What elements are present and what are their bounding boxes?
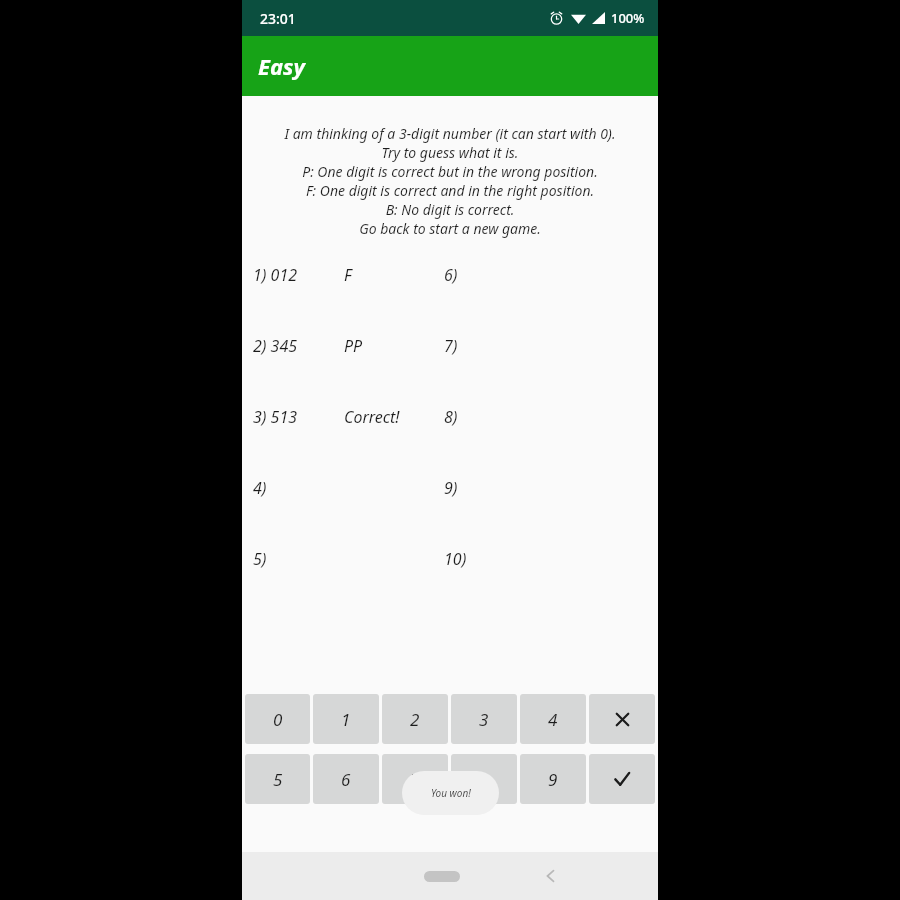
button[interactable]: 6 <box>313 754 379 804</box>
staticText: 9 <box>548 768 558 791</box>
button[interactable]: 1 <box>313 694 379 744</box>
staticText: Try to guess what it is. <box>253 143 647 162</box>
staticText: 6) <box>444 264 458 286</box>
staticText: B: No digit is correct. <box>253 200 647 219</box>
staticText: 4 <box>548 708 558 731</box>
staticText: 100% <box>611 9 645 27</box>
staticText: 9) <box>444 477 458 499</box>
button[interactable]: 2 <box>382 694 448 744</box>
button[interactable]: 8 <box>451 754 517 804</box>
staticText: F: One digit is correct and in the right… <box>253 181 647 200</box>
staticText: 5) <box>253 548 267 570</box>
staticText: 7) <box>444 335 458 357</box>
staticText: 8 <box>479 768 489 791</box>
button[interactable]: Back <box>534 859 568 893</box>
button[interactable]: Clear <box>589 694 655 744</box>
staticText: I am thinking of a 3-digit number (it ca… <box>253 124 647 143</box>
button[interactable]: 5 <box>245 754 310 804</box>
button[interactable]: 7 <box>382 754 448 804</box>
staticText: 10) <box>444 548 467 570</box>
button[interactable]: 9 <box>520 754 586 804</box>
staticText: 3 <box>479 708 489 731</box>
staticText: 2) 345 <box>253 335 298 357</box>
button[interactable]: 4 <box>520 694 586 744</box>
staticText: 23:01 <box>260 9 296 28</box>
staticText: 2 <box>410 708 420 731</box>
staticText: 0 <box>273 708 283 731</box>
staticText: 8) <box>444 406 458 428</box>
staticText: 6 <box>341 768 351 791</box>
button[interactable]: Home <box>424 871 460 882</box>
staticText: 7 <box>410 768 420 791</box>
staticText: 1) 012 <box>253 264 298 286</box>
button[interactable]: Submit <box>589 754 655 804</box>
button[interactable]: 0 <box>245 694 310 744</box>
button[interactable]: 3 <box>451 694 517 744</box>
staticText: P: One digit is correct but in the wrong… <box>253 162 647 181</box>
staticText: 4) <box>253 477 267 499</box>
staticText: You won! <box>431 786 471 800</box>
staticText: Correct! <box>344 406 400 428</box>
staticText: PP <box>344 335 363 357</box>
staticText: Easy <box>258 51 305 81</box>
staticText: F <box>344 264 352 286</box>
staticText: 3) 513 <box>253 406 298 428</box>
staticText: 5 <box>273 768 283 791</box>
staticText: 1 <box>341 708 351 731</box>
staticText: Go back to start a new game. <box>253 219 647 238</box>
